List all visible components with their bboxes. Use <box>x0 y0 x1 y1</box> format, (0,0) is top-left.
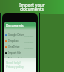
staticText: Take a photo <box>8 57 24 61</box>
staticText: Dropbox <box>8 39 19 43</box>
staticText: Import your documents <box>19 2 45 13</box>
staticText: Connect <box>24 34 34 37</box>
staticText: Privacy policy <box>6 65 24 69</box>
button[interactable]: Take a photo <box>4 56 36 62</box>
staticText: Google Drive <box>8 33 24 37</box>
button[interactable]: Dropbox <box>4 38 36 44</box>
button[interactable]: Import file <box>4 50 36 56</box>
staticText: OneDrive <box>8 45 20 49</box>
staticText: Documents <box>6 24 24 28</box>
staticText: Connect <box>24 40 34 43</box>
staticText: Need help? <box>6 61 21 65</box>
button[interactable]: Google Drive <box>4 32 36 38</box>
button[interactable]: OneDrive <box>4 44 36 50</box>
staticText: Connect <box>24 46 34 49</box>
staticText: Import file <box>8 51 21 55</box>
